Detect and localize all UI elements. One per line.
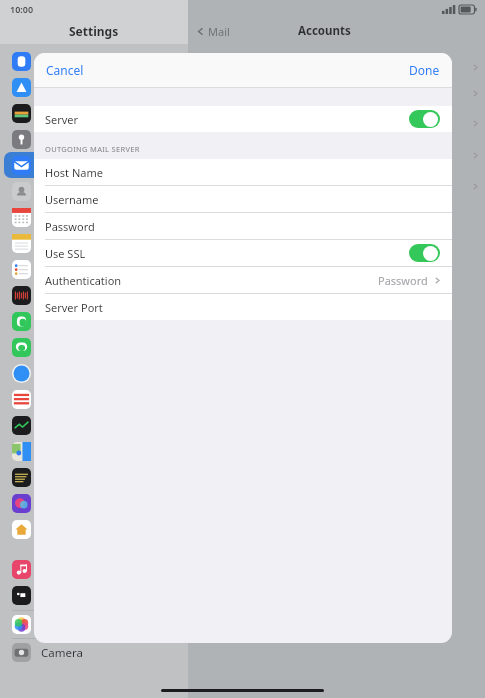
- staticText: Password: [45, 219, 95, 234]
- button[interactable]: [0, 230, 188, 256]
- button[interactable]: Authentication: [34, 267, 452, 293]
- button[interactable]: [0, 100, 188, 126]
- button[interactable]: Done: [409, 62, 440, 78]
- button[interactable]: [0, 582, 188, 608]
- staticText: Mail: [208, 24, 230, 39]
- button[interactable]: Server Port: [34, 294, 452, 320]
- button[interactable]: Host Name: [34, 159, 452, 185]
- button[interactable]: Server: [34, 106, 452, 132]
- button[interactable]: [0, 74, 188, 100]
- button[interactable]: [0, 178, 188, 204]
- button[interactable]: [0, 490, 188, 516]
- staticText: OUTGOING MAIL SERVER: [45, 144, 140, 154]
- button[interactable]: [0, 308, 188, 334]
- staticText: Cancel: [46, 62, 84, 78]
- button[interactable]: [4, 152, 184, 178]
- button[interactable]: Cancel: [46, 62, 84, 78]
- button[interactable]: Toggle on: [409, 110, 440, 128]
- button[interactable]: [0, 360, 188, 386]
- button[interactable]: [0, 386, 188, 412]
- button[interactable]: [0, 438, 188, 464]
- staticText: Use SSL: [45, 246, 86, 261]
- staticText: Password: [378, 273, 428, 288]
- button[interactable]: Use SSL: [34, 240, 452, 266]
- button[interactable]: Camera: [0, 639, 188, 666]
- button[interactable]: Password: [34, 213, 452, 239]
- staticText: Host Name: [45, 165, 103, 180]
- staticText: Authentication: [45, 273, 122, 288]
- button[interactable]: [0, 48, 188, 74]
- staticText: Server: [45, 112, 79, 127]
- button[interactable]: [0, 204, 188, 230]
- button[interactable]: [0, 334, 188, 360]
- staticText: Accounts: [298, 23, 351, 39]
- button[interactable]: [0, 556, 188, 582]
- staticText: Username: [45, 192, 99, 207]
- button[interactable]: [0, 282, 188, 308]
- button[interactable]: [0, 516, 188, 542]
- button[interactable]: Mail: [196, 24, 230, 39]
- button[interactable]: [0, 126, 188, 152]
- button[interactable]: [0, 412, 188, 438]
- staticText: Done: [409, 62, 440, 78]
- button[interactable]: Toggle on: [409, 244, 440, 262]
- staticText: Settings: [69, 23, 119, 39]
- staticText: Camera: [41, 645, 83, 661]
- button[interactable]: [0, 256, 188, 282]
- staticText: 10:00: [10, 3, 34, 15]
- button[interactable]: [0, 464, 188, 490]
- button[interactable]: Username: [34, 186, 452, 212]
- button[interactable]: Photos: [0, 611, 188, 638]
- staticText: Server Port: [45, 300, 103, 315]
